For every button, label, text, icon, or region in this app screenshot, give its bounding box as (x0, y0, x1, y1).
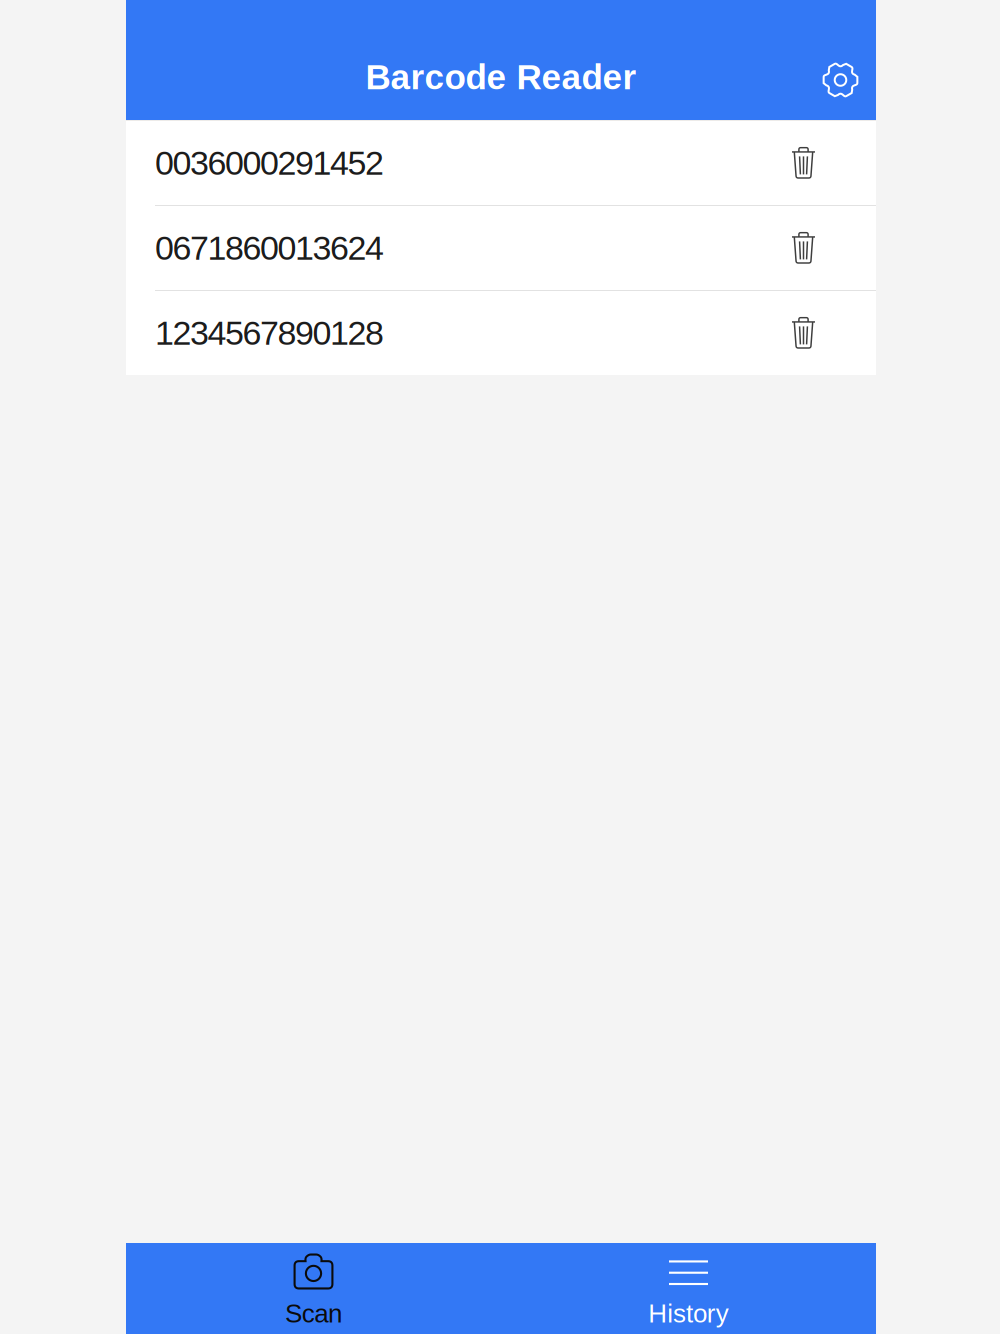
button[interactable]: Settings (805, 0, 876, 120)
button[interactable]: Delete 1234567890128 (768, 290, 839, 375)
staticText: 1234567890128 (155, 314, 384, 352)
staticText: Scan (285, 1299, 342, 1328)
staticText: 0671860013624 (155, 229, 384, 267)
button[interactable]: Delete 0036000291452 (768, 120, 839, 205)
staticText: 0036000291452 (155, 144, 384, 182)
staticText: Barcode Reader (365, 57, 636, 97)
staticText: History (648, 1299, 729, 1328)
button[interactable]: History (501, 1243, 876, 1334)
button[interactable]: Scan (126, 1243, 501, 1334)
button[interactable]: Delete 0671860013624 (768, 205, 839, 290)
